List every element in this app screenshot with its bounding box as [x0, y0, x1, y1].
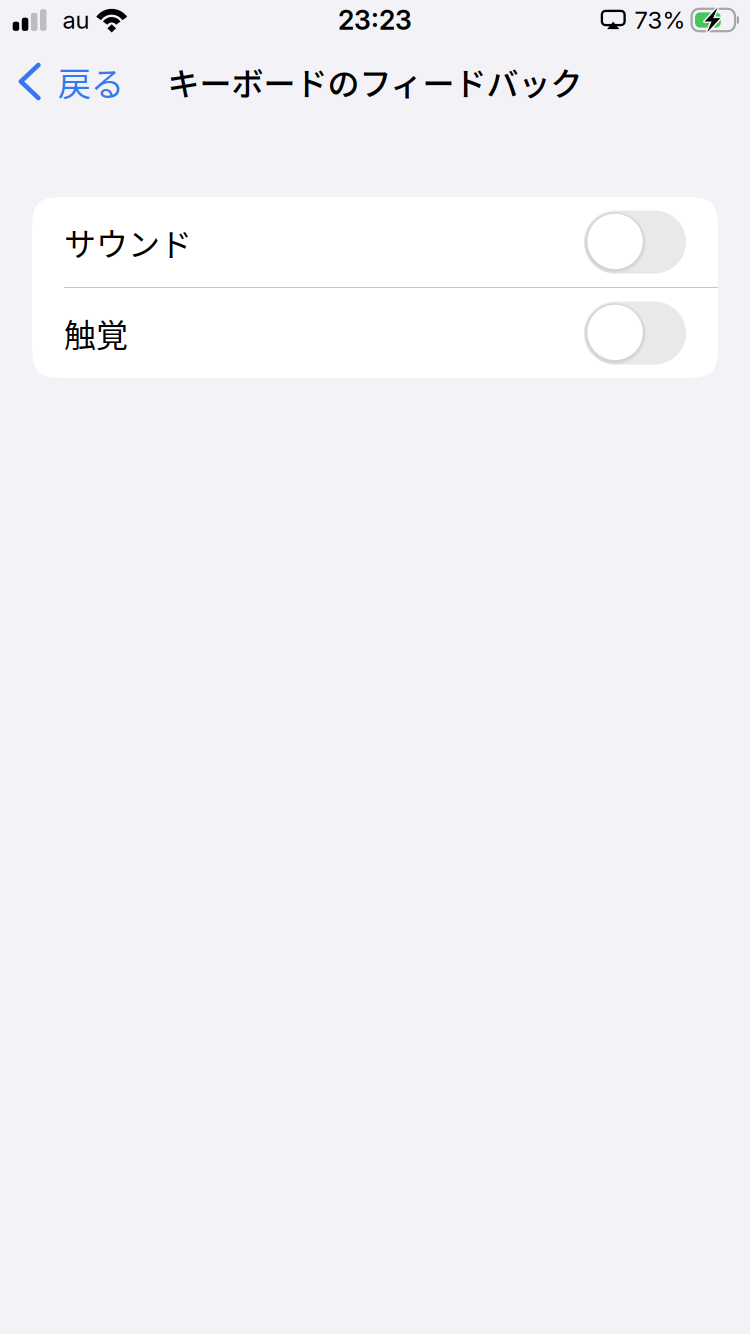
staticText: 23:23: [338, 4, 412, 36]
button[interactable]: 触覚: [584, 301, 686, 364]
staticText: 戻る: [58, 57, 124, 106]
staticText: 73%: [635, 5, 686, 34]
staticText: キーボードのフィードバック: [167, 58, 582, 105]
staticText: au: [62, 5, 89, 34]
button[interactable]: 戻る: [0, 36, 250, 124]
button[interactable]: サウンド: [32, 197, 718, 287]
button[interactable]: 触覚: [32, 288, 718, 378]
staticText: 触覚: [64, 310, 128, 356]
staticText: サウンド: [64, 219, 192, 265]
button[interactable]: サウンド: [584, 210, 686, 273]
